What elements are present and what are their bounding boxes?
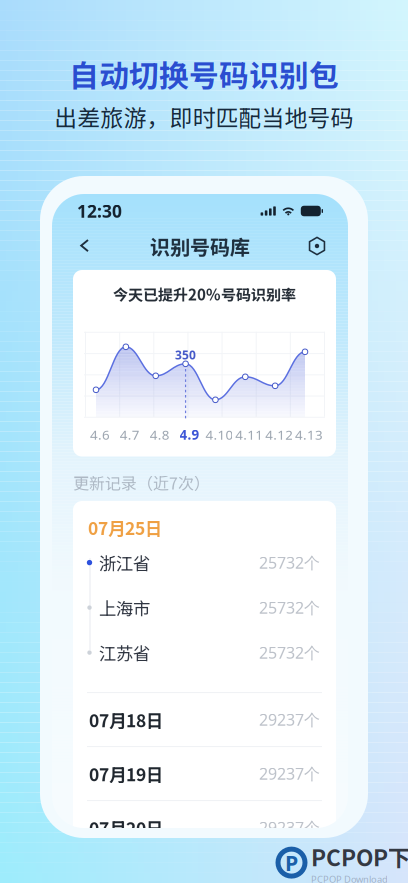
staticText: 识别号码库 <box>150 231 250 260</box>
staticText: 07月20日 <box>89 815 163 840</box>
staticText: 浙江省 <box>99 550 150 575</box>
button[interactable]: 07月20日 <box>73 801 336 854</box>
staticText: PCPOP Download <box>311 873 388 883</box>
staticText: 今天已提升20%号码识别率 <box>113 283 296 305</box>
staticText: 自动切换号码识别包 <box>69 52 339 95</box>
staticText: 29237个 <box>259 763 320 784</box>
button[interactable]: 浙江省 <box>73 540 336 585</box>
staticText: 4.13 <box>295 426 323 443</box>
staticText: 4.7 <box>120 426 140 443</box>
button[interactable]: 江苏省 <box>73 630 336 675</box>
staticText: 4.11 <box>235 426 263 443</box>
staticText: 4.8 <box>150 426 170 443</box>
staticText: 29237个 <box>259 817 320 838</box>
staticText: 350 <box>175 347 196 363</box>
staticText: 4.6 <box>90 426 110 443</box>
staticText: 4.10 <box>205 426 233 443</box>
staticText: 12:30 <box>77 199 122 222</box>
staticText: 出差旅游，即时匹配当地号码 <box>54 100 353 133</box>
staticText: 07月18日 <box>89 707 163 732</box>
staticText: 29237个 <box>259 709 320 730</box>
button[interactable]: Back <box>66 228 104 264</box>
staticText: PCPOP下载 <box>311 840 408 873</box>
staticText: P <box>285 848 298 877</box>
button[interactable]: 上海市 <box>73 585 336 630</box>
button[interactable]: Settings <box>300 228 334 264</box>
button[interactable]: 07月18日 <box>73 693 336 746</box>
staticText: 25732个 <box>259 552 320 573</box>
staticText: 25732个 <box>259 597 320 618</box>
button[interactable]: 07月19日 <box>73 747 336 800</box>
staticText: 更新记录（近7次） <box>73 471 210 494</box>
staticText: 4.12 <box>265 426 293 443</box>
staticText: 江苏省 <box>99 640 150 665</box>
staticText: 4.9 <box>180 426 200 443</box>
staticText: 07月19日 <box>89 761 163 786</box>
staticText: 25732个 <box>259 642 320 663</box>
staticText: 上海市 <box>99 595 150 620</box>
staticText: 07月25日 <box>88 515 162 540</box>
